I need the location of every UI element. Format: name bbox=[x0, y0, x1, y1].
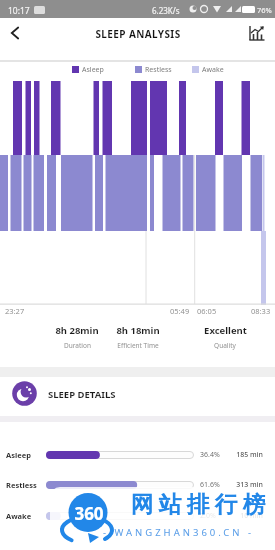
button[interactable]: SLEEP DETAILS bbox=[0, 377, 275, 416]
staticText: 05:49 bbox=[170, 306, 190, 316]
staticText: 61.6% bbox=[200, 480, 220, 490]
staticText: Awake bbox=[202, 65, 224, 75]
staticText: Duration bbox=[64, 341, 91, 350]
staticText: 23:27 bbox=[5, 306, 25, 316]
staticText: 8h 18min bbox=[116, 324, 160, 337]
staticText: SLEEP ANALYSIS bbox=[95, 27, 181, 41]
staticText: 08:33 bbox=[251, 306, 271, 316]
staticText: 360 bbox=[74, 502, 104, 525]
button[interactable]: Restless bbox=[0, 475, 275, 495]
staticText: 2.0% bbox=[200, 511, 216, 521]
staticText: Awake bbox=[6, 511, 32, 521]
staticText: 185 min bbox=[236, 450, 263, 460]
button[interactable]: Awake bbox=[0, 506, 275, 526]
staticText: Quality bbox=[214, 341, 236, 350]
staticText: 76% bbox=[257, 5, 272, 15]
staticText: Asleep bbox=[6, 450, 31, 460]
staticText: 10:17 bbox=[8, 5, 30, 17]
staticText: Efficient Time bbox=[117, 341, 159, 350]
staticText: 6.23K/s bbox=[152, 5, 180, 16]
staticText: SLEEP DETAILS bbox=[48, 388, 116, 401]
staticText: 网站排行榜 bbox=[128, 490, 268, 518]
staticText: 10 min bbox=[240, 511, 263, 521]
staticText: 8h 28min bbox=[55, 324, 99, 337]
button[interactable] bbox=[249, 25, 265, 42]
staticText: Asleep bbox=[82, 65, 104, 75]
staticText: Restless bbox=[6, 480, 37, 490]
button[interactable]: Asleep bbox=[0, 445, 275, 465]
staticText: 36.4% bbox=[200, 450, 220, 460]
staticText: Excellent bbox=[204, 324, 247, 337]
staticText: 313 min bbox=[236, 480, 263, 490]
button[interactable] bbox=[11, 27, 19, 39]
staticText: 06:05 bbox=[197, 306, 217, 316]
staticText: Restless bbox=[145, 65, 172, 75]
staticText: - WANGZHAN360.CN - bbox=[103, 526, 255, 539]
